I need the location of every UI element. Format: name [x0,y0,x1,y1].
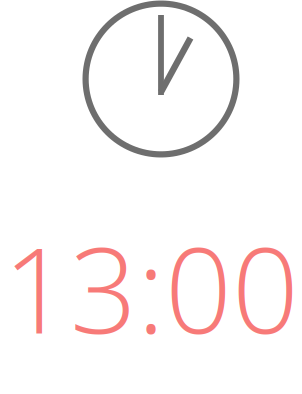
staticText: 13:00 [3,208,299,368]
